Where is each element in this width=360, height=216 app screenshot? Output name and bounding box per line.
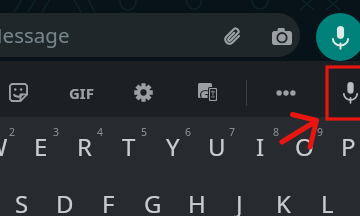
staticText: J: [236, 187, 243, 216]
staticText: U: [208, 130, 226, 163]
staticText: L: [321, 187, 334, 216]
staticText: 7: [229, 125, 236, 139]
staticText: P: [341, 130, 356, 163]
staticText: I: [256, 130, 265, 163]
button[interactable]: Record voice message: [316, 13, 360, 61]
staticText: R: [77, 130, 92, 163]
staticText: 2: [9, 125, 16, 139]
button[interactable]: O: [283, 124, 326, 168]
button[interactable]: Y: [151, 124, 194, 168]
button[interactable]: G: [131, 181, 174, 216]
button[interactable]: More options: [268, 75, 303, 110]
staticText: GIF: [69, 83, 94, 103]
button[interactable]: H: [175, 181, 218, 216]
staticText: 6: [185, 125, 192, 139]
staticText: S: [15, 187, 29, 216]
button[interactable]: W: [0, 124, 18, 168]
staticText: 8: [273, 125, 280, 139]
staticText: K: [276, 187, 291, 216]
staticText: 9: [317, 125, 324, 139]
staticText: 4: [97, 125, 104, 139]
button[interactable]: L: [306, 181, 349, 216]
button[interactable]: GIF: [62, 75, 100, 110]
button[interactable]: S: [0, 181, 43, 216]
button[interactable]: E: [19, 124, 62, 168]
button[interactable]: F: [87, 181, 130, 216]
staticText: H: [188, 187, 206, 216]
button[interactable]: T: [107, 124, 150, 168]
button[interactable]: K: [262, 181, 305, 216]
button[interactable]: Stickers: [1, 75, 36, 110]
button[interactable]: I: [239, 124, 282, 168]
staticText: Y: [166, 130, 180, 163]
staticText: E: [34, 130, 48, 163]
button[interactable]: J: [218, 181, 261, 216]
staticText: 5: [141, 125, 148, 139]
button[interactable]: D: [43, 181, 86, 216]
staticText: O: [295, 130, 314, 163]
staticText: F: [102, 187, 115, 216]
button[interactable]: U: [195, 124, 238, 168]
button[interactable]: Settings: [125, 75, 161, 110]
button[interactable]: Voice input: [332, 74, 360, 110]
button[interactable]: R: [63, 124, 106, 168]
button[interactable]: Translate: [190, 75, 225, 110]
staticText: D: [56, 187, 74, 216]
staticText: G: [144, 187, 162, 216]
staticText: W: [0, 130, 8, 163]
staticText: T: [122, 130, 136, 163]
button[interactable]: P: [327, 124, 360, 168]
button[interactable]: Message: [0, 13, 300, 57]
staticText: 3: [53, 125, 60, 139]
staticText: Message: [0, 21, 70, 49]
button[interactable]: Attach: [214, 18, 251, 55]
staticText: G: [199, 84, 210, 98]
button[interactable]: Camera: [263, 18, 300, 55]
